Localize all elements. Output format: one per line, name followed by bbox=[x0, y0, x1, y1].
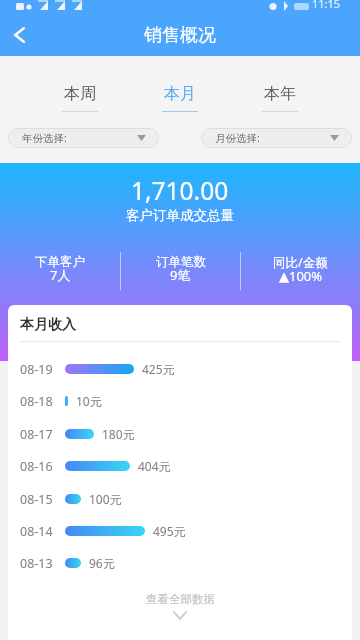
staticText: 495元 bbox=[153, 523, 186, 539]
staticText: 425元 bbox=[142, 361, 175, 377]
staticText: 月份选择: bbox=[215, 131, 260, 145]
staticText: 7人 bbox=[50, 266, 71, 284]
button[interactable]: Back bbox=[0, 15, 40, 55]
staticText: ▲100% bbox=[279, 267, 323, 285]
staticText: 9笔 bbox=[170, 266, 191, 284]
staticText: 08-14 bbox=[20, 523, 53, 540]
button[interactable]: 本年 bbox=[230, 56, 330, 112]
staticText: 11:15 bbox=[312, 0, 341, 10]
staticText: 08-19 bbox=[20, 361, 53, 378]
staticText: 08-13 bbox=[20, 555, 53, 572]
button[interactable]: 年份选择: bbox=[8, 128, 159, 148]
staticText: 1,710.00 bbox=[131, 174, 229, 207]
staticText: 404元 bbox=[138, 458, 171, 474]
staticText: 客户订单成交总量 bbox=[126, 207, 234, 224]
button[interactable]: 查看全部数据 bbox=[8, 592, 352, 619]
button[interactable]: 本月 bbox=[130, 56, 230, 112]
staticText: 查看全部数据 bbox=[146, 592, 215, 606]
button[interactable]: 本周 bbox=[30, 56, 130, 112]
button[interactable]: 月份选择: bbox=[201, 128, 352, 148]
staticText: 本月 bbox=[164, 84, 196, 104]
staticText: 08-18 bbox=[20, 393, 53, 410]
staticText: 本年 bbox=[264, 84, 296, 104]
staticText: 本周 bbox=[64, 84, 96, 104]
staticText: 08-17 bbox=[20, 426, 53, 443]
staticText: 订单笔数 bbox=[156, 254, 206, 270]
staticText: 08-16 bbox=[20, 458, 53, 475]
staticText: 08-15 bbox=[20, 491, 53, 508]
staticText: 销售概况 bbox=[144, 24, 216, 47]
staticText: 本月收入 bbox=[20, 316, 76, 334]
staticText: 同比/金额 bbox=[273, 254, 328, 271]
staticText: 100元 bbox=[89, 491, 122, 507]
staticText: 10元 bbox=[76, 393, 102, 409]
staticText: 180元 bbox=[102, 426, 135, 442]
staticText: 年份选择: bbox=[22, 131, 67, 145]
staticText: 96元 bbox=[89, 555, 115, 571]
staticText: 下单客户 bbox=[35, 254, 85, 270]
